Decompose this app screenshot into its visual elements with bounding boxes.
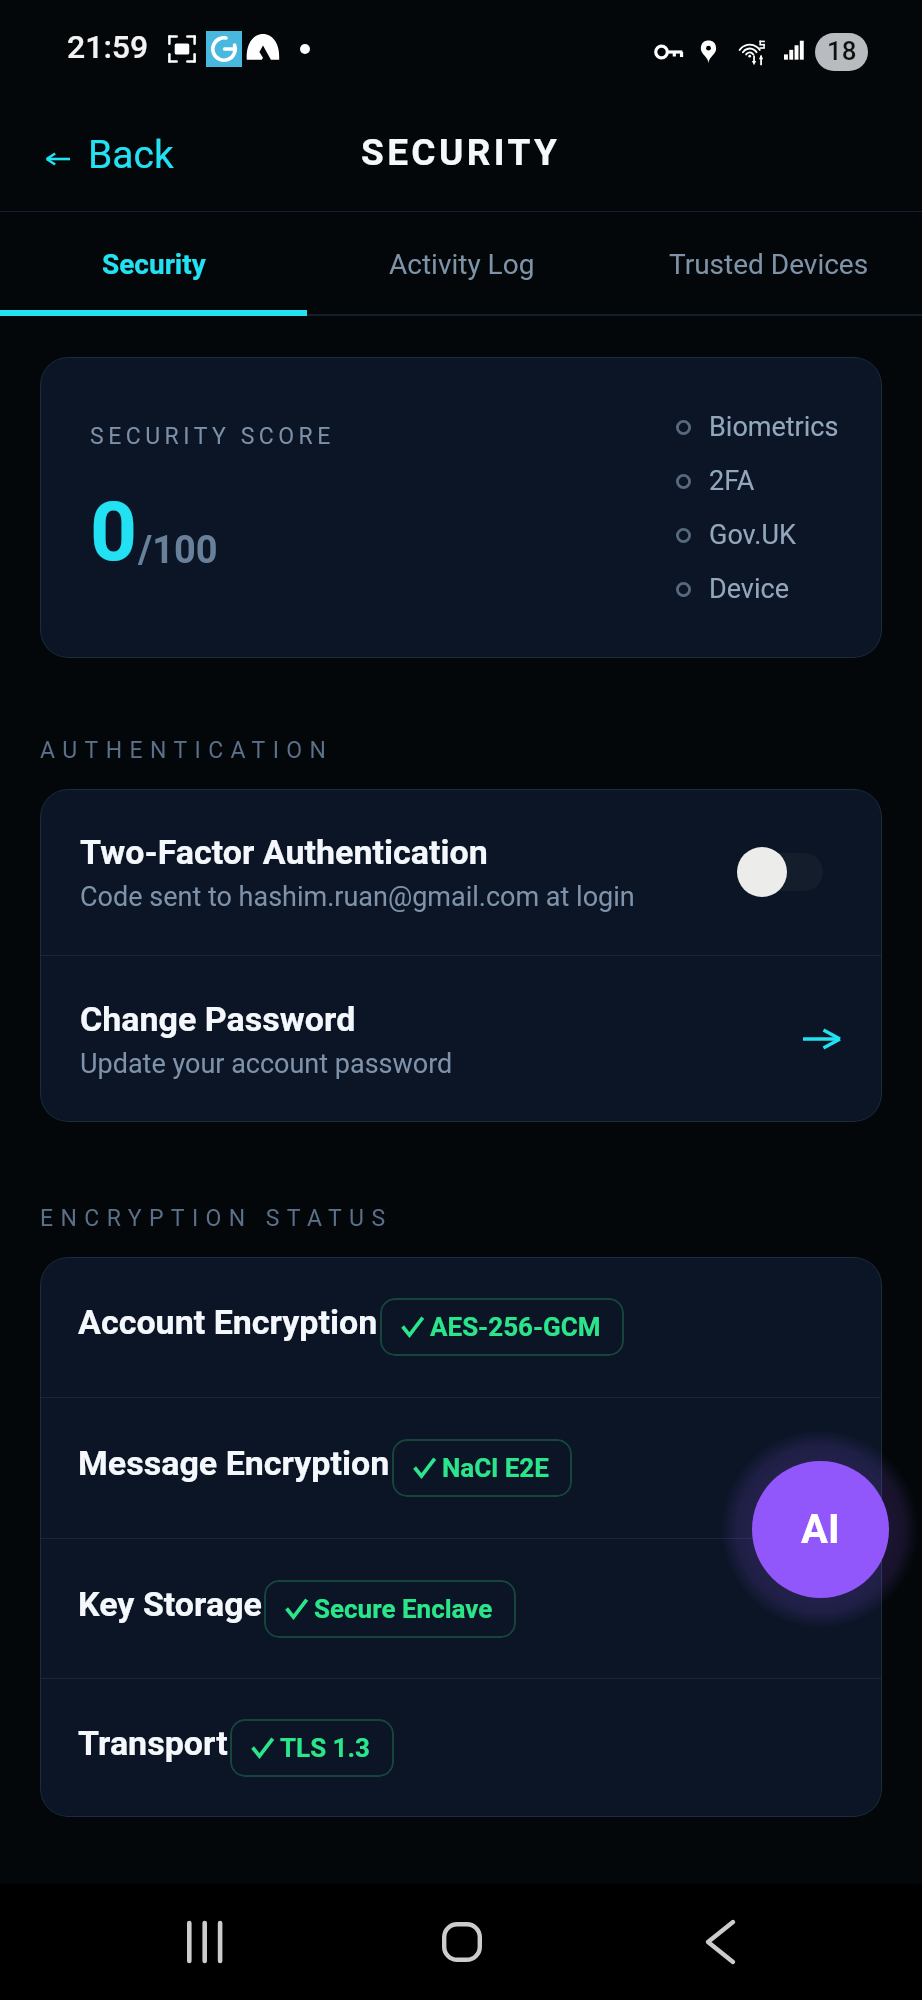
- staticText: NaCl E2E: [442, 1453, 549, 1483]
- staticText: Device: [709, 573, 789, 605]
- staticText: TLS 1.3: [280, 1733, 371, 1763]
- staticText: 0: [90, 484, 138, 580]
- staticText: /100: [138, 528, 218, 573]
- staticText: Security: [102, 248, 206, 281]
- staticText: Update your account password: [80, 1048, 453, 1080]
- staticText: ENCRYPTION STATUS: [40, 1205, 393, 1232]
- button[interactable]: Account Encryption: [40, 1257, 882, 1397]
- staticText: Biometrics: [709, 411, 839, 443]
- staticText: Transport: [78, 1723, 228, 1763]
- button[interactable]: Back: [0, 122, 204, 196]
- staticText: Message Encryption: [78, 1443, 390, 1483]
- button[interactable]: Transport: [40, 1679, 882, 1817]
- button[interactable]: Trusted Devices: [615, 212, 922, 316]
- button[interactable]: Two-Factor Authentication: [40, 789, 882, 955]
- staticText: 18: [827, 36, 857, 66]
- button[interactable]: Key Storage: [40, 1539, 882, 1678]
- button[interactable]: Back: [675, 1897, 765, 1987]
- staticText: AUTHENTICATION: [40, 737, 334, 764]
- staticText: AI: [801, 1506, 840, 1553]
- button[interactable]: Change Password: [40, 956, 882, 1122]
- button[interactable]: Two-Factor Authentication toggle: [737, 847, 823, 897]
- button[interactable]: Message Encryption: [40, 1398, 882, 1538]
- staticText: Trusted Devices: [669, 248, 869, 281]
- staticText: 21:59: [67, 28, 149, 66]
- button[interactable]: AI assistant: [752, 1461, 889, 1598]
- button[interactable]: Activity Log: [308, 212, 615, 316]
- button[interactable]: Home: [417, 1897, 507, 1987]
- staticText: 2FA: [709, 465, 755, 497]
- staticText: Gov.UK: [709, 519, 796, 551]
- staticText: SECURITY SCORE: [90, 423, 335, 450]
- staticText: SECURITY: [361, 131, 561, 174]
- staticText: Secure Enclave: [314, 1594, 493, 1624]
- staticText: Activity Log: [389, 248, 535, 281]
- staticText: AES-256-GCM: [430, 1312, 601, 1342]
- staticText: Code sent to hashim.ruan@gmail.com at lo…: [80, 881, 635, 913]
- button[interactable]: Security: [0, 212, 308, 316]
- staticText: Back: [88, 132, 174, 178]
- staticText: Account Encryption: [78, 1302, 378, 1342]
- button[interactable]: Recent apps: [160, 1897, 250, 1987]
- staticText: Key Storage: [78, 1584, 262, 1624]
- staticText: Two-Factor Authentication: [80, 832, 488, 872]
- staticText: Change Password: [80, 999, 356, 1039]
